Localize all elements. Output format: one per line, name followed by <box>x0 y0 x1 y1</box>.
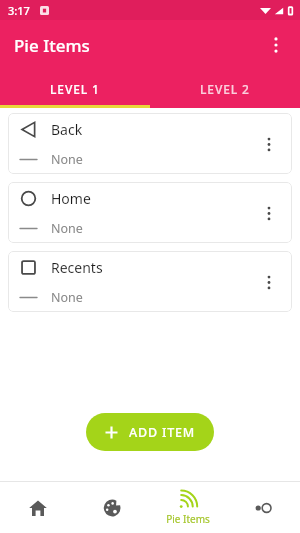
staticText: None <box>51 151 83 168</box>
button[interactable]: More options <box>256 25 296 65</box>
button[interactable]: Recents <box>8 251 292 312</box>
button[interactable]: ADD ITEM <box>86 413 214 451</box>
button[interactable]: Pie Items <box>150 482 225 533</box>
button[interactable]: Item options for Back <box>254 129 284 159</box>
staticText: Pie Items <box>14 34 90 57</box>
button[interactable]: LEVEL 1 <box>0 70 150 108</box>
staticText: None <box>51 220 83 237</box>
button[interactable]: Item options for Recents <box>254 267 284 297</box>
button[interactable]: Navigation item <box>75 482 150 533</box>
button[interactable]: Navigation item <box>225 482 300 533</box>
staticText: LEVEL 2 <box>200 81 250 97</box>
button[interactable]: Item options for Home <box>254 198 284 228</box>
button[interactable]: Back <box>8 113 292 174</box>
staticText: None <box>51 289 83 306</box>
staticText: Back <box>51 120 83 139</box>
button[interactable]: LEVEL 2 <box>150 70 300 108</box>
staticText: ADD ITEM <box>129 424 196 441</box>
staticText: LEVEL 1 <box>50 81 100 97</box>
button[interactable]: Navigation item <box>0 482 75 533</box>
staticText: Recents <box>51 258 103 277</box>
button[interactable]: Home <box>8 182 292 243</box>
staticText: 3:17 <box>8 3 30 18</box>
staticText: Pie Items <box>166 512 210 526</box>
staticText: Home <box>51 189 91 208</box>
